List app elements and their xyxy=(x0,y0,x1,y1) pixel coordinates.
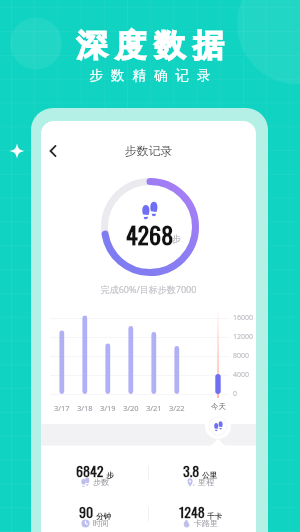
staticText: 深度数据 xyxy=(4,26,300,65)
staticText: 公里 xyxy=(202,471,217,480)
staticText: 3/22 xyxy=(169,403,185,413)
button[interactable]: 90 xyxy=(59,501,131,532)
staticText: 3/18 xyxy=(77,403,93,413)
staticText: 里程 xyxy=(198,477,214,487)
staticText: 千卡 xyxy=(207,512,222,521)
button[interactable]: Today steps xyxy=(210,421,226,432)
staticText: 12000 xyxy=(233,332,254,342)
button[interactable]: 6842 xyxy=(59,460,131,494)
staticText: 6842 xyxy=(76,460,104,481)
staticText: 步数 xyxy=(93,477,109,487)
staticText: 步数精确记录 xyxy=(4,67,300,84)
staticText: 步 xyxy=(106,471,114,480)
staticText: 8000 xyxy=(233,351,250,361)
staticText: 1248 xyxy=(179,501,205,522)
staticText: 步 xyxy=(172,233,181,244)
staticText: 今天 xyxy=(211,402,226,411)
staticText: 卡路里 xyxy=(194,518,218,528)
button[interactable]: 1248 xyxy=(164,501,236,532)
staticText: 完成60%/目标步数7000 xyxy=(41,283,256,295)
staticText: 3/21 xyxy=(146,403,162,413)
staticText: 3.8 xyxy=(183,460,200,481)
staticText: 分钟 xyxy=(96,512,111,521)
staticText: 3/17 xyxy=(54,403,70,413)
staticText: 步数记录 xyxy=(41,143,256,158)
staticText: 4268 xyxy=(126,216,174,252)
staticText: 3/19 xyxy=(100,403,116,413)
staticText: 90 xyxy=(79,501,94,522)
staticText: 时间 xyxy=(93,518,109,528)
staticText: 0 xyxy=(233,389,238,399)
staticText: 4000 xyxy=(233,370,250,380)
staticText: 3/20 xyxy=(123,403,139,413)
button[interactable]: 3.8 xyxy=(164,460,236,494)
button[interactable]: Back xyxy=(41,139,65,163)
staticText: 16000 xyxy=(233,313,254,323)
